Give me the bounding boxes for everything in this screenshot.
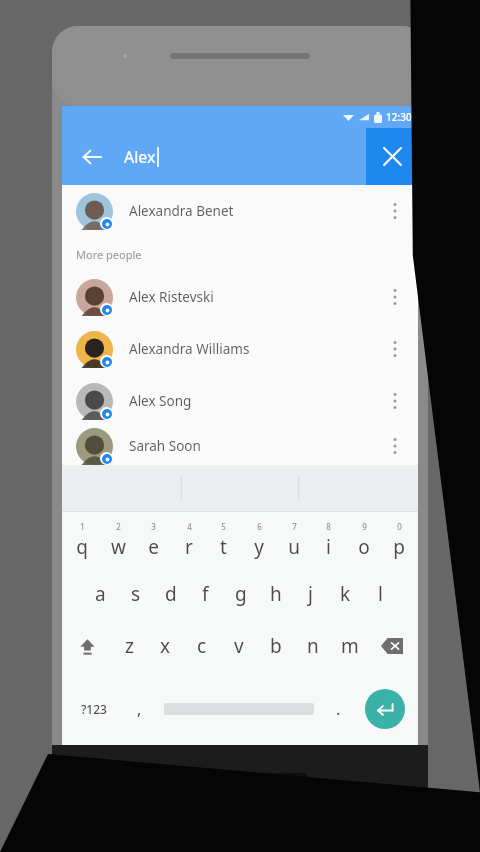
staticText: n <box>307 633 319 659</box>
staticText: ?123 <box>81 701 107 717</box>
staticText: l <box>378 581 383 607</box>
button[interactable]: , <box>121 672 157 745</box>
button[interactable]: j <box>293 568 328 620</box>
staticText: a <box>95 581 106 607</box>
button[interactable]: More options <box>380 275 410 319</box>
button[interactable]: d <box>153 568 188 620</box>
button[interactable]: 9 <box>346 512 381 568</box>
staticText: More people <box>76 247 142 262</box>
staticText: i <box>326 534 331 560</box>
staticText: k <box>340 581 351 607</box>
staticText: 7 <box>292 521 297 532</box>
button[interactable]: 8 <box>311 512 346 568</box>
staticText: d <box>165 581 177 607</box>
staticText: y <box>254 534 264 560</box>
staticText: Sarah Soon <box>129 437 380 455</box>
button[interactable]: v <box>220 620 257 672</box>
button[interactable]: Enter <box>365 689 405 729</box>
staticText: o <box>358 534 370 560</box>
button[interactable]: More options <box>380 427 410 465</box>
staticText: 8 <box>326 521 331 532</box>
button[interactable]: 1 <box>64 512 100 568</box>
button[interactable]: x <box>147 620 183 672</box>
button[interactable]: b <box>257 620 294 672</box>
button[interactable]: Alexandra Benet <box>62 185 418 237</box>
staticText: z <box>125 633 134 659</box>
staticText: , <box>137 698 142 720</box>
button[interactable]: 4 <box>171 512 206 568</box>
staticText: e <box>148 534 159 560</box>
staticText: 4 <box>187 521 192 532</box>
button[interactable]: More options <box>380 379 410 423</box>
button[interactable]: Shift <box>64 620 111 672</box>
staticText: 12:30 <box>386 110 412 124</box>
button[interactable]: f <box>188 568 223 620</box>
staticText: 0 <box>397 521 402 532</box>
button[interactable]: g <box>223 568 258 620</box>
staticText: Alex Ristevski <box>129 288 380 306</box>
button[interactable]: n <box>294 620 331 672</box>
button[interactable]: 0 <box>381 512 416 568</box>
staticText: 1 <box>80 521 85 532</box>
button[interactable]: More options <box>380 327 410 371</box>
staticText: 3 <box>151 521 156 532</box>
staticText: 5 <box>221 521 226 532</box>
staticText: s <box>131 581 141 607</box>
button[interactable]: Back <box>70 135 114 179</box>
button[interactable]: ?123 <box>66 672 121 745</box>
staticText: q <box>76 534 88 560</box>
button[interactable]: m <box>331 620 368 672</box>
staticText: Alexandra Benet <box>129 202 380 220</box>
button[interactable]: Clear <box>366 128 418 185</box>
staticText: 2 <box>116 521 121 532</box>
staticText: r <box>185 534 193 560</box>
staticText: v <box>234 633 244 659</box>
button[interactable]: s <box>118 568 153 620</box>
staticText: c <box>197 633 207 659</box>
button[interactable]: Alex Song <box>62 375 418 427</box>
staticText: t <box>220 534 227 560</box>
staticText: Alex <box>124 146 156 168</box>
staticText: p <box>393 534 405 560</box>
button[interactable]: a <box>82 568 118 620</box>
staticText: m <box>341 633 359 659</box>
button[interactable]: More options <box>380 189 410 233</box>
button[interactable]: 2 <box>100 512 136 568</box>
staticText: w <box>111 534 126 560</box>
staticText: 9 <box>362 521 367 532</box>
button[interactable]: k <box>328 568 363 620</box>
staticText: u <box>288 534 300 560</box>
button[interactable]: . <box>320 672 356 745</box>
button[interactable]: Sarah Soon <box>62 427 418 465</box>
button[interactable]: Alexandra Williams <box>62 323 418 375</box>
button[interactable]: 7 <box>276 512 311 568</box>
staticText: Alex Song <box>129 392 380 410</box>
staticText: x <box>160 633 171 659</box>
button[interactable]: 3 <box>136 512 171 568</box>
button[interactable]: l <box>363 568 398 620</box>
staticText: b <box>270 633 282 659</box>
staticText: Alexandra Williams <box>129 340 380 358</box>
button[interactable]: 6 <box>241 512 276 568</box>
button[interactable]: Backspace <box>368 620 416 672</box>
staticText: h <box>270 581 282 607</box>
staticText: f <box>202 581 209 607</box>
button[interactable]: Space <box>157 672 320 745</box>
staticText: . <box>336 698 341 720</box>
button[interactable]: Alex Ristevski <box>62 271 418 323</box>
button[interactable]: 5 <box>206 512 241 568</box>
button[interactable]: c <box>183 620 220 672</box>
staticText: j <box>308 581 313 607</box>
button[interactable]: h <box>258 568 293 620</box>
staticText: 6 <box>257 521 262 532</box>
staticText: g <box>235 581 247 607</box>
button[interactable]: z <box>111 620 147 672</box>
